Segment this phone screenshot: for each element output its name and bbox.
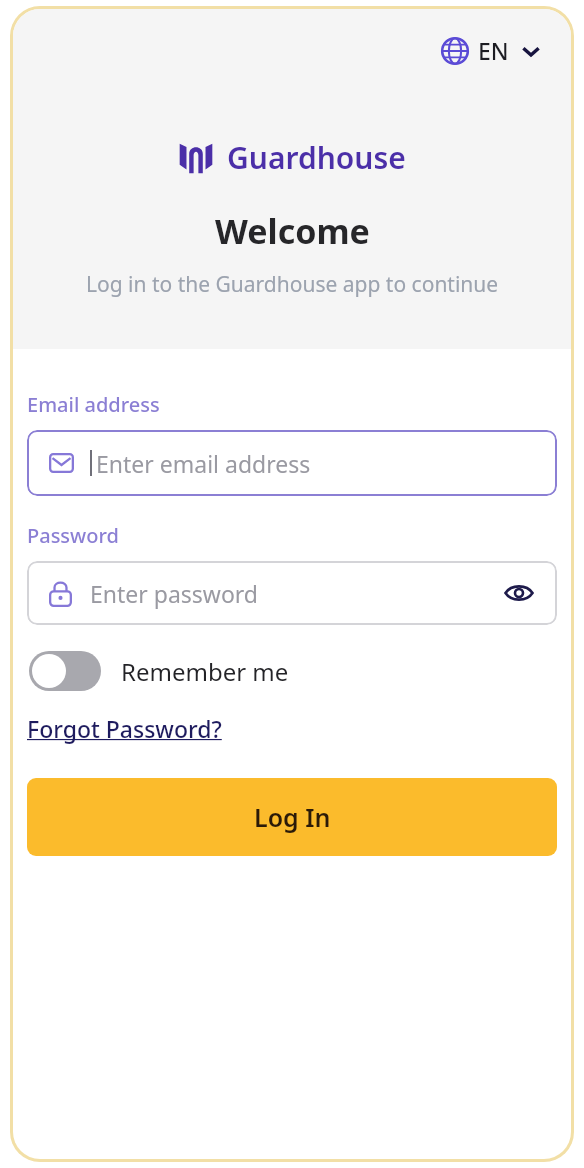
button[interactable]: Select language xyxy=(437,31,545,70)
staticText: Remember me xyxy=(121,655,289,688)
button[interactable]: Show password xyxy=(501,575,537,611)
staticText: Welcome xyxy=(215,208,370,254)
staticText: Forgot Password? xyxy=(27,713,222,744)
staticText: Enter password xyxy=(90,578,501,609)
button[interactable]: Log In xyxy=(27,778,557,856)
staticText: Log In xyxy=(254,800,331,834)
staticText: Email address xyxy=(27,391,160,418)
button[interactable]: Remember me xyxy=(27,647,291,695)
staticText: Guardhouse xyxy=(227,137,406,178)
staticText: Log in to the Guardhouse app to continue xyxy=(86,270,499,299)
button[interactable]: Enter email address xyxy=(27,430,557,496)
staticText: Enter email address xyxy=(96,448,311,479)
staticText: EN xyxy=(478,35,509,66)
button[interactable]: Enter password xyxy=(27,561,557,625)
button[interactable]: Forgot Password? xyxy=(27,711,222,746)
staticText: Password xyxy=(27,522,119,549)
